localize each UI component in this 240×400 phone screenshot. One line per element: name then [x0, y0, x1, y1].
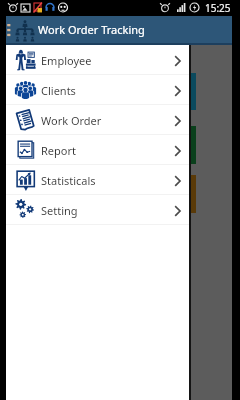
staticText: Statisticals — [41, 173, 96, 188]
button[interactable]: Report — [6, 135, 189, 165]
button[interactable]: Open navigation drawer — [6, 24, 12, 38]
staticText: Clients — [41, 83, 76, 98]
staticText: Setting — [41, 203, 78, 218]
staticText: Report — [41, 143, 76, 158]
staticText: Work Order — [41, 113, 102, 128]
staticText: 15:25 — [205, 1, 231, 15]
button[interactable]: Clients — [6, 75, 189, 105]
staticText: Work Order Tracking — [38, 22, 145, 37]
button[interactable]: Statisticals — [6, 165, 189, 195]
button[interactable]: Employee — [6, 45, 189, 75]
staticText: Employee — [41, 53, 92, 68]
button[interactable]: Work Order — [6, 105, 189, 135]
button[interactable]: Setting — [6, 195, 189, 225]
